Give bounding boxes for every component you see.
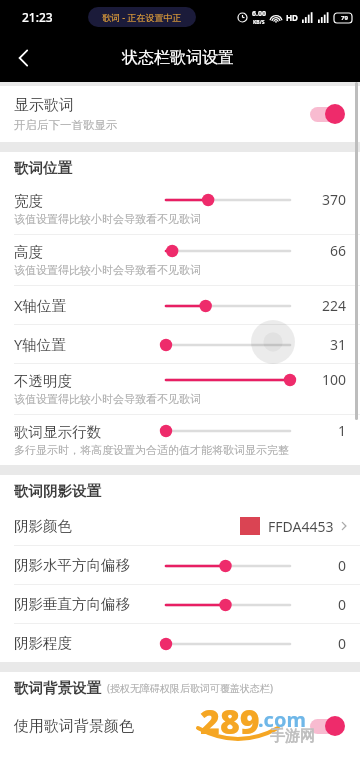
staticText: 31 bbox=[312, 335, 346, 354]
staticText: 79 bbox=[341, 14, 348, 22]
staticText: 手游网 bbox=[270, 727, 315, 746]
button[interactable]: 歌词显示行数 bbox=[0, 415, 360, 465]
staticText: 宽度 bbox=[14, 192, 43, 210]
staticText: (授权无障碍权限后歌词可覆盖状态栏) bbox=[107, 681, 273, 695]
button[interactable]: 不透明度 bbox=[0, 364, 360, 414]
staticText: 歌词 - 正在设置中正 bbox=[102, 11, 182, 23]
staticText: 该值设置得比较小时会导致看不见歌词 bbox=[14, 212, 201, 226]
button[interactable]: 阴影程度 bbox=[0, 624, 360, 662]
staticText: 370 bbox=[312, 190, 346, 209]
button[interactable]: Back bbox=[0, 34, 48, 82]
staticText: 高度 bbox=[14, 243, 43, 261]
staticText: 6.00 bbox=[252, 9, 266, 19]
staticText: 100 bbox=[312, 370, 346, 389]
button[interactable]: X轴位置 bbox=[0, 286, 360, 324]
staticText: 显示歌词 bbox=[14, 96, 74, 115]
staticText: 不透明度 bbox=[14, 372, 72, 390]
staticText: 多行显示时，将高度设置为合适的值才能将歌词显示完整 bbox=[14, 443, 289, 457]
staticText: 歌词位置 bbox=[14, 159, 72, 177]
staticText: 阴影颜色 bbox=[14, 517, 72, 535]
staticText: 状态栏歌词设置 bbox=[122, 48, 234, 68]
staticText: 0 bbox=[312, 595, 346, 614]
staticText: 0 bbox=[312, 634, 346, 653]
staticText: 阴影水平方向偏移 bbox=[14, 556, 130, 574]
button[interactable]: 宽度 bbox=[0, 184, 360, 234]
staticText: 该值设置得比较小时会导致看不见歌词 bbox=[14, 263, 201, 277]
staticText: 289 bbox=[200, 698, 260, 744]
staticText: 0 bbox=[312, 556, 346, 575]
staticText: FFDA4453 bbox=[268, 517, 334, 536]
staticText: HD bbox=[286, 12, 298, 23]
button[interactable]: 显示歌词 bbox=[0, 86, 360, 142]
button[interactable]: 使用歌词背景颜色 bbox=[0, 704, 360, 748]
button[interactable]: 阴影颜色 bbox=[0, 507, 360, 545]
staticText: 21:23 bbox=[22, 9, 53, 25]
button[interactable]: 高度 bbox=[0, 235, 360, 285]
staticText: 224 bbox=[312, 296, 346, 315]
staticText: .com bbox=[258, 706, 306, 733]
staticText: X轴位置 bbox=[14, 295, 66, 315]
staticText: KB/S bbox=[253, 19, 265, 26]
staticText: 66 bbox=[312, 241, 346, 260]
staticText: 歌词显示行数 bbox=[14, 423, 101, 441]
button[interactable]: 阴影垂直方向偏移 bbox=[0, 585, 360, 623]
staticText: 1 bbox=[312, 421, 346, 440]
staticText: 开启后下一首歌显示 bbox=[14, 118, 118, 132]
staticText: Y轴位置 bbox=[14, 334, 66, 354]
staticText: 歌词背景设置 bbox=[14, 679, 101, 697]
button[interactable]: Y轴位置 bbox=[0, 325, 360, 363]
staticText: 使用歌词背景颜色 bbox=[14, 717, 134, 736]
staticText: 该值设置得比较小时会导致看不见歌词 bbox=[14, 392, 201, 406]
staticText: 阴影程度 bbox=[14, 634, 72, 652]
button[interactable]: 阴影水平方向偏移 bbox=[0, 546, 360, 584]
staticText: 阴影垂直方向偏移 bbox=[14, 595, 130, 613]
staticText: 歌词阴影设置 bbox=[14, 482, 101, 500]
